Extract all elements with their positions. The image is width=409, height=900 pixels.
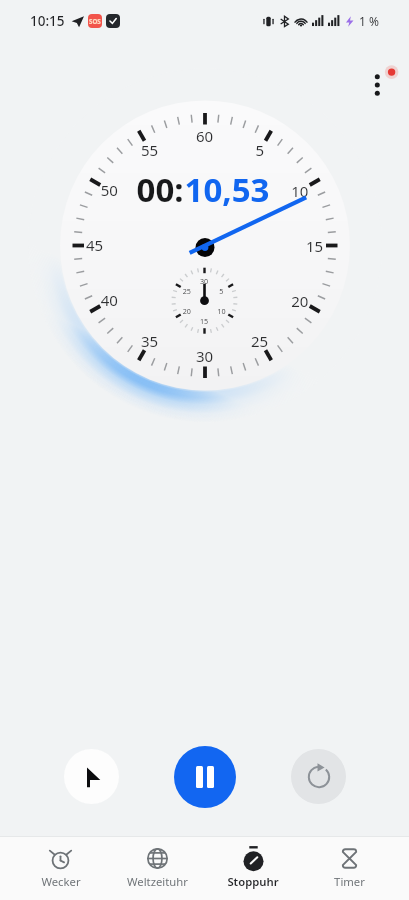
staticText: 10:15: [30, 12, 65, 30]
staticText: Stoppuhr: [227, 874, 279, 889]
staticText: SOS: [89, 17, 101, 25]
button[interactable]: More options: [353, 61, 401, 109]
button[interactable]: Pause: [174, 746, 236, 808]
staticText: 1 %: [359, 13, 379, 29]
button[interactable]: Weltzeituhr: [109, 837, 205, 889]
button[interactable]: Wecker: [12, 837, 109, 889]
staticText: Weltzeituhr: [127, 874, 188, 889]
button[interactable]: Stoppuhr: [205, 837, 301, 889]
button[interactable]: Lap: [64, 749, 119, 804]
staticText: Timer: [334, 874, 365, 889]
button[interactable]: Timer: [301, 837, 397, 889]
button[interactable]: Reset: [291, 749, 346, 804]
staticText: Wecker: [41, 874, 81, 889]
